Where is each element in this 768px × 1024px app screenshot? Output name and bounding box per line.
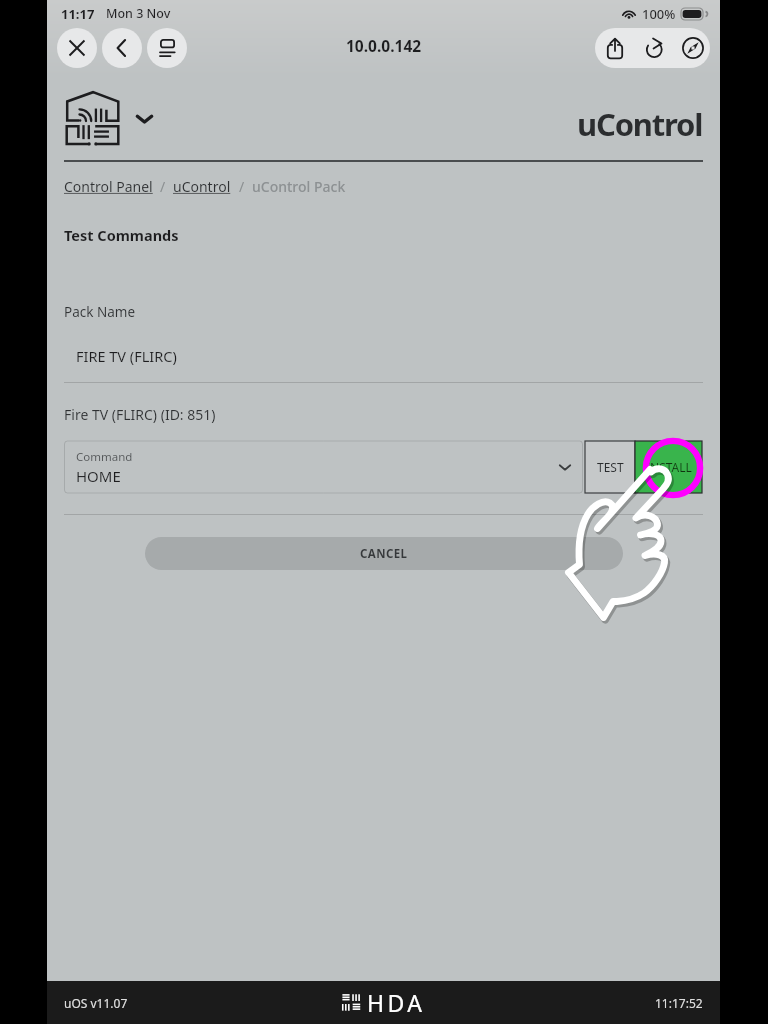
button[interactable]: CANCEL (145, 537, 623, 570)
button[interactable]: Open in Safari (675, 28, 710, 68)
staticText: 11:17:52 (655, 995, 703, 1011)
staticText: Pack Name (64, 303, 136, 321)
button[interactable]: Expand menu (132, 108, 156, 130)
staticText: Fire TV (FLIRC) (ID: 851) (64, 405, 216, 424)
staticText: uControl (577, 103, 703, 145)
staticText: HOME (76, 466, 121, 486)
button[interactable]: Control Panel (64, 177, 153, 196)
staticText: uControl Pack (252, 177, 346, 196)
staticText: Mon 3 Nov (106, 5, 171, 22)
staticText: 11:17 (61, 5, 95, 23)
staticText: FIRE TV (FLIRC) (76, 346, 177, 366)
staticText: INSTALL (646, 459, 692, 475)
button[interactable]: Back (102, 28, 142, 68)
staticText: HDA (367, 987, 426, 1018)
button[interactable]: Reader view (147, 28, 187, 68)
staticText: uOS v11.07 (64, 995, 128, 1011)
staticText: 10.0.0.142 (346, 35, 422, 56)
staticText: Command (76, 449, 133, 465)
staticText: / (239, 177, 245, 196)
button[interactable]: uControl (173, 177, 231, 196)
button[interactable]: TEST (585, 441, 635, 493)
staticText: TEST (597, 459, 624, 475)
button[interactable]: Share (595, 28, 635, 68)
button[interactable]: Close (57, 28, 97, 68)
staticText: CANCEL (360, 546, 408, 562)
staticText: / (160, 177, 166, 196)
staticText: Test Commands (64, 225, 179, 245)
button[interactable]: Reload (635, 28, 675, 68)
staticText: 100% (642, 5, 676, 23)
button[interactable]: INSTALL (635, 441, 702, 493)
button[interactable]: Command (64, 440, 583, 494)
